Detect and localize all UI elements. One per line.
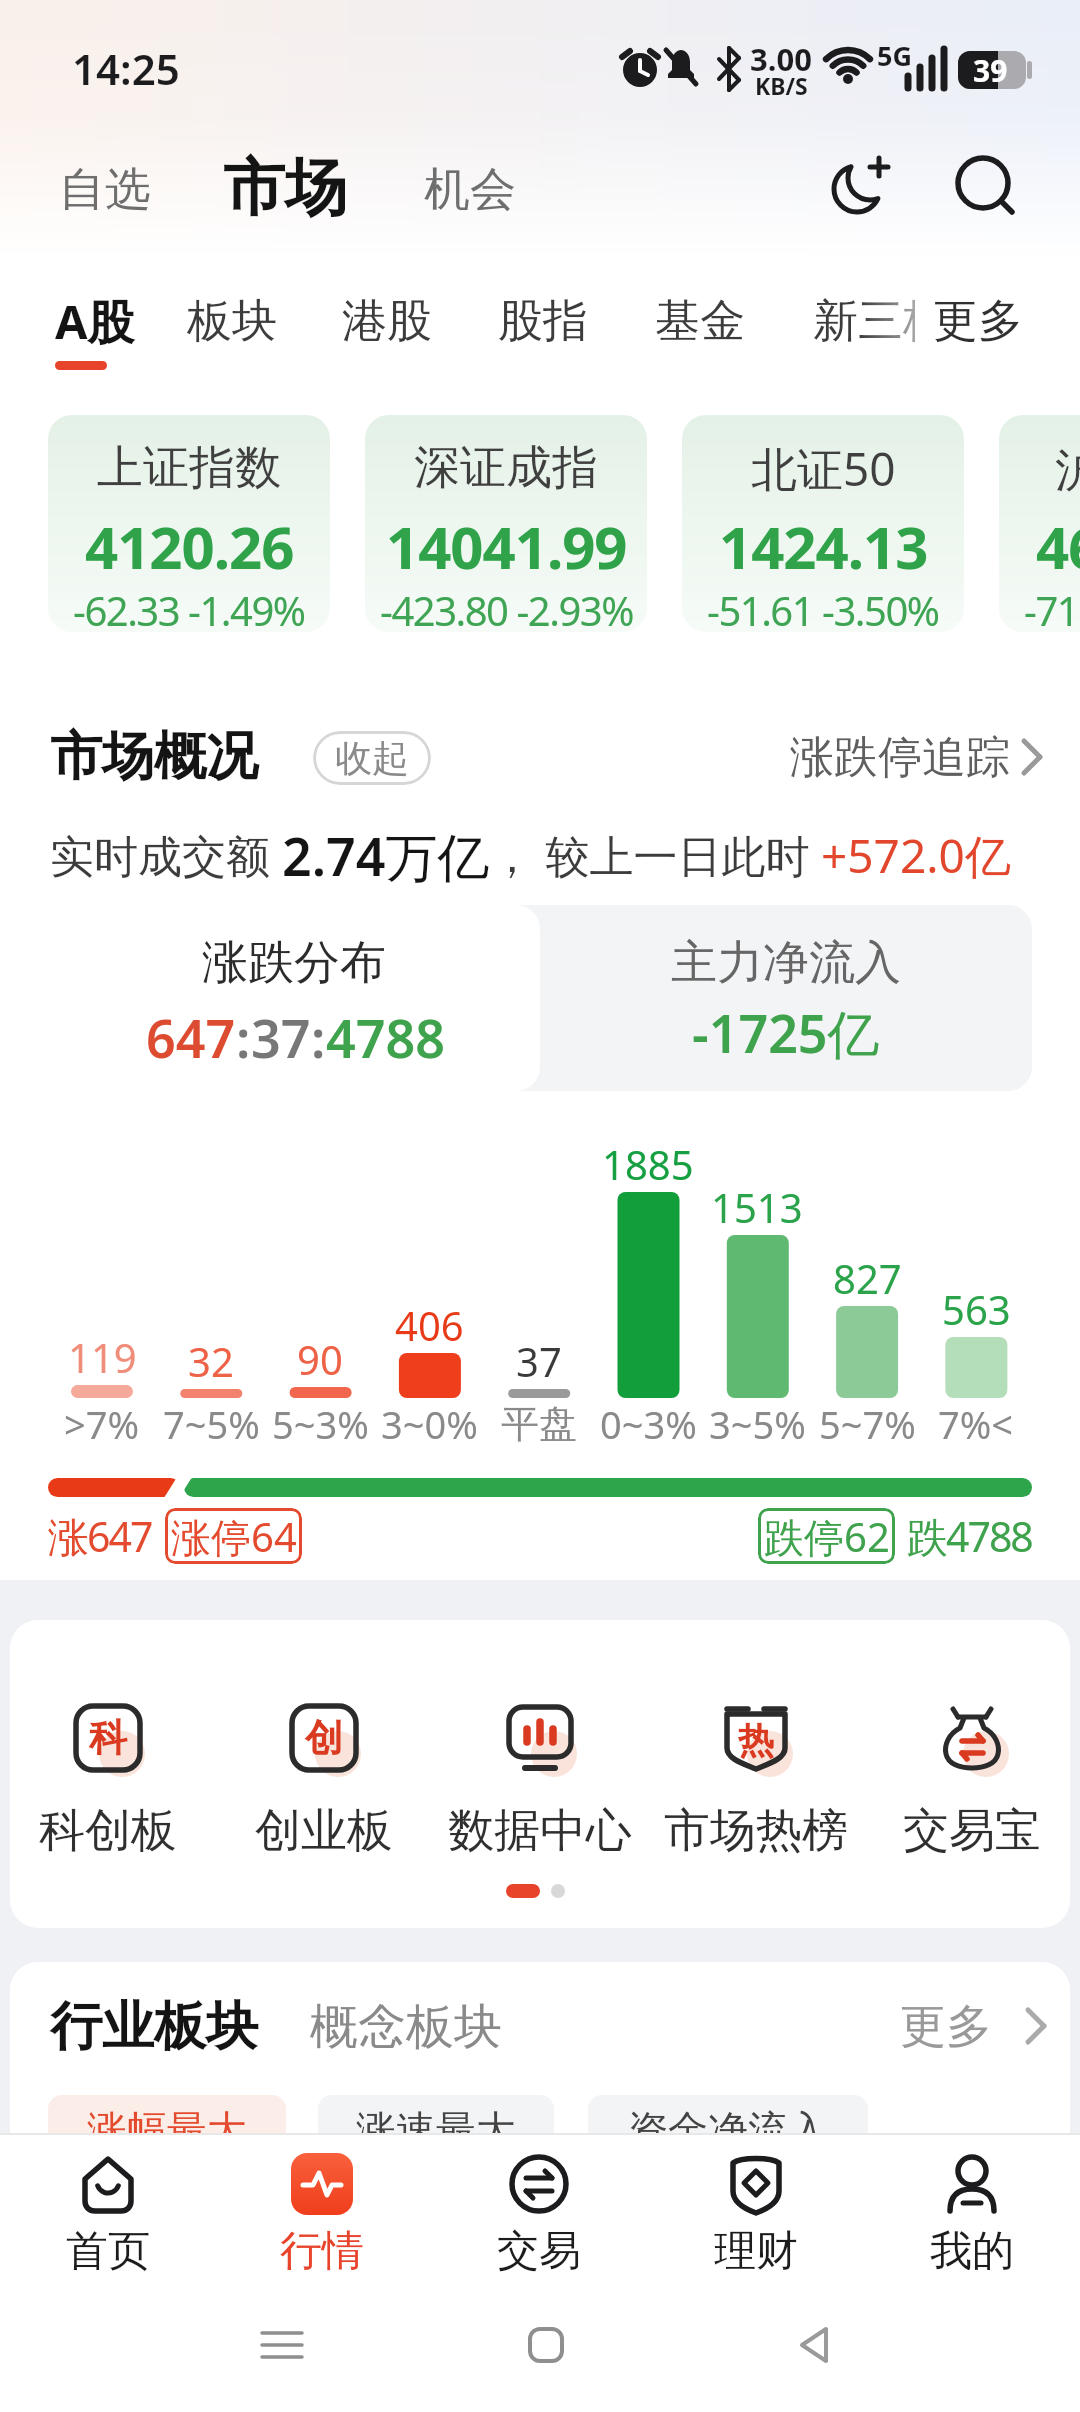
button[interactable]: 数据中心 xyxy=(420,1692,660,1868)
staticText: 更多 xyxy=(900,1998,992,2056)
staticText: 406 xyxy=(395,1298,464,1352)
staticText: 科 xyxy=(89,1714,127,1762)
button[interactable]: 深证成指 xyxy=(365,415,647,632)
staticText: 股指 xyxy=(498,293,588,350)
button[interactable]: 北证50 xyxy=(682,415,964,632)
staticText: 32 xyxy=(188,1334,234,1388)
staticText: ， 较上一日此时 xyxy=(490,825,821,885)
staticText: 我的 xyxy=(930,2225,1014,2278)
staticText: 北证50 xyxy=(751,437,896,500)
button[interactable]: 港股 xyxy=(327,285,447,357)
button[interactable]: A股 xyxy=(45,285,145,357)
staticText: 涨647 xyxy=(48,1508,152,1564)
button[interactable]: 股指 xyxy=(483,285,603,357)
staticText: 平盘 xyxy=(501,1400,577,1448)
staticText: 市场概况 xyxy=(50,724,258,790)
staticText: 1513 xyxy=(711,1180,803,1234)
button[interactable]: 涨速最大 xyxy=(318,2095,554,2165)
staticText: 首页 xyxy=(66,2225,150,2278)
staticText: 科创板 xyxy=(39,1802,177,1860)
button[interactable] xyxy=(252,2315,312,2375)
button[interactable]: 热 xyxy=(636,1692,876,1868)
button[interactable]: 科 xyxy=(0,1692,228,1868)
staticText: : xyxy=(236,1002,251,1062)
staticText: 3.00 xyxy=(750,38,812,80)
button[interactable]: 上证指数 xyxy=(48,415,330,632)
button[interactable] xyxy=(822,150,898,226)
staticText: 827 xyxy=(833,1251,902,1305)
button[interactable]: 更多 xyxy=(900,1995,1040,2059)
button[interactable]: 交易 xyxy=(449,2145,629,2285)
button[interactable]: 涨幅最大 xyxy=(48,2095,286,2165)
staticText: 涨速最大 xyxy=(356,2105,516,2155)
staticText: 39 xyxy=(973,50,1008,91)
staticText: 1424.13 xyxy=(719,507,928,585)
button[interactable]: 行情 xyxy=(232,2145,412,2285)
staticText: -71.31 -1.52% xyxy=(1024,583,1080,632)
staticText: 概念板块 xyxy=(310,1997,502,2057)
staticText: 收起 xyxy=(335,735,409,782)
staticText: 涨停64 xyxy=(171,1509,297,1564)
staticText: >7% xyxy=(64,1398,140,1450)
staticText: 更多 xyxy=(933,293,1023,350)
staticText: 实时成交额 xyxy=(50,825,282,885)
staticText: -51.61 -3.50% xyxy=(707,583,939,632)
staticText: KB/S xyxy=(755,70,808,101)
staticText: 理财 xyxy=(714,2225,798,2278)
staticText: 涨跌停追踪 xyxy=(790,730,1010,785)
staticText: 市场 xyxy=(223,149,347,227)
staticText: -423.80 -2.93% xyxy=(380,583,633,632)
button[interactable]: 交易宝 xyxy=(852,1692,1080,1868)
staticText: 0~3% xyxy=(600,1398,697,1450)
staticText: A股 xyxy=(55,289,135,353)
staticText: 交易 xyxy=(497,2225,581,2278)
button[interactable]: 自选 xyxy=(40,150,170,230)
staticText: 90 xyxy=(297,1332,343,1386)
staticText: 港股 xyxy=(342,293,432,350)
staticText: 行情 xyxy=(280,2225,364,2278)
staticText: 数据中心 xyxy=(448,1802,632,1860)
staticText: 深证成指 xyxy=(414,439,598,497)
button[interactable]: 机会 xyxy=(405,150,535,230)
button[interactable]: 板块 xyxy=(172,285,292,357)
staticText: 市场热榜 xyxy=(664,1802,848,1860)
staticText: 5~3% xyxy=(272,1398,369,1450)
staticText: 基金 xyxy=(655,293,745,350)
button[interactable]: 更多 xyxy=(915,285,1040,357)
staticText: 14041.99 xyxy=(386,507,627,585)
staticText: 新三板 xyxy=(813,293,948,350)
staticText: 创业板 xyxy=(255,1802,393,1860)
button[interactable]: 基金 xyxy=(640,285,760,357)
button[interactable] xyxy=(516,2315,576,2375)
staticText: 交易宝 xyxy=(903,1802,1041,1860)
staticText: 行业板块 xyxy=(50,1994,258,2060)
button[interactable] xyxy=(540,905,1032,1091)
button[interactable] xyxy=(950,150,1026,226)
button[interactable]: 我的 xyxy=(882,2145,1062,2285)
staticText: -62.33 -1.49% xyxy=(73,583,305,632)
staticText: 37 xyxy=(251,1002,311,1062)
staticText: 37 xyxy=(516,1334,562,1388)
staticText: 7%< xyxy=(938,1398,1014,1450)
staticText: 1885 xyxy=(602,1137,694,1191)
staticText: 跌停62 xyxy=(764,1509,890,1564)
staticText: 119 xyxy=(68,1330,137,1384)
button[interactable]: 收起 xyxy=(313,731,431,785)
button[interactable]: 涨跌停追踪 xyxy=(790,725,1040,789)
button[interactable]: 首页 xyxy=(18,2145,198,2285)
button[interactable] xyxy=(48,905,540,1091)
staticText: 创 xyxy=(305,1714,343,1762)
staticText: 涨跌分布 xyxy=(202,934,386,992)
staticText: 7~5% xyxy=(163,1398,260,1450)
staticText: : xyxy=(311,1002,326,1062)
button[interactable]: 理财 xyxy=(666,2145,846,2285)
button[interactable]: 市场 xyxy=(215,142,355,234)
staticText: 沪深300 xyxy=(1055,437,1080,500)
button[interactable]: 创 xyxy=(204,1692,444,1868)
staticText: 3~5% xyxy=(709,1398,806,1450)
staticText: -1725亿 xyxy=(692,997,880,1068)
button[interactable]: 资金净流入 xyxy=(588,2095,868,2165)
button[interactable]: 沪深300 xyxy=(999,415,1080,632)
button[interactable] xyxy=(784,2315,844,2375)
staticText: 5G xyxy=(877,37,912,74)
